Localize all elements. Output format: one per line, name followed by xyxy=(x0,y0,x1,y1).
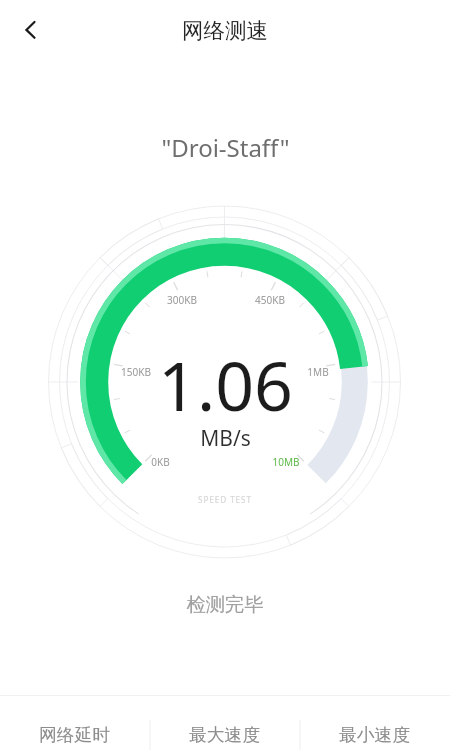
staticText: 450KB xyxy=(255,293,285,307)
staticText: 网络延时 xyxy=(39,724,111,746)
staticText: 最大速度 xyxy=(189,724,261,746)
button[interactable]: 最大速度 xyxy=(150,719,300,750)
staticText: 检测完毕 xyxy=(186,592,264,616)
staticText: 最小速度 xyxy=(339,724,411,746)
staticText: 150KB xyxy=(121,365,151,379)
staticText: 1.06 xyxy=(158,338,293,431)
staticText: 1MB xyxy=(307,365,329,379)
staticText: "Droi-Staff" xyxy=(161,131,290,164)
button[interactable]: 网络延时 xyxy=(0,719,150,750)
staticText: MB/s xyxy=(200,424,251,453)
staticText: 网络测速 xyxy=(182,17,268,44)
staticText: 300KB xyxy=(167,293,197,307)
button[interactable]: 最小速度 xyxy=(300,719,450,750)
staticText: SPEED TEST xyxy=(198,494,252,505)
staticText: 0KB xyxy=(151,455,170,469)
staticText: 10MB xyxy=(272,455,300,469)
button[interactable]: Back xyxy=(8,8,53,53)
